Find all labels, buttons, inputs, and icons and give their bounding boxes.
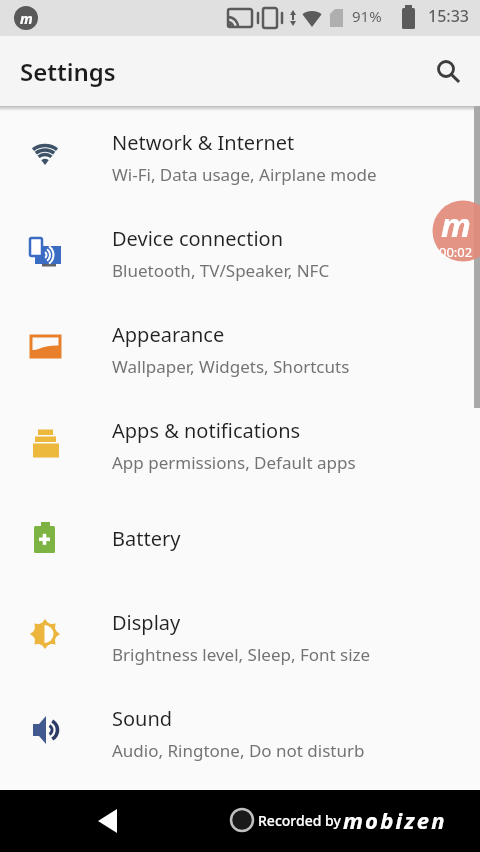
button[interactable]: Apps & notifications bbox=[0, 394, 480, 490]
staticText: Apps & notifications bbox=[112, 417, 301, 444]
button[interactable] bbox=[88, 805, 128, 837]
staticText: Settings bbox=[20, 55, 116, 88]
staticText: Audio, Ringtone, Do not disturb bbox=[112, 739, 365, 762]
staticText: Display bbox=[112, 609, 181, 636]
staticText: Recorded by bbox=[258, 811, 341, 830]
staticText: App permissions, Default apps bbox=[112, 451, 356, 474]
button[interactable]: m bbox=[432, 200, 480, 263]
staticText: Network & Internet bbox=[112, 129, 295, 156]
staticText: m bbox=[441, 202, 471, 242]
staticText: 15:33 bbox=[428, 5, 469, 27]
button[interactable]: Device connection bbox=[0, 202, 480, 298]
staticText: Wi-Fi, Data usage, Airplane mode bbox=[112, 163, 377, 186]
staticText: Wallpaper, Widgets, Shortcuts bbox=[112, 355, 350, 378]
button[interactable] bbox=[427, 50, 467, 90]
staticText: Brightness level, Sleep, Font size bbox=[112, 643, 371, 666]
staticText: 91% bbox=[352, 6, 382, 26]
staticText: mobizen bbox=[343, 805, 447, 835]
staticText: Device connection bbox=[112, 225, 284, 252]
button[interactable]: Network & Internet bbox=[0, 106, 480, 202]
staticText: Battery bbox=[112, 525, 181, 552]
button[interactable]: Display bbox=[0, 586, 480, 682]
staticText: Bluetooth, TV/Speaker, NFC bbox=[112, 259, 330, 282]
staticText: Sound bbox=[112, 705, 173, 732]
staticText: 00:02 bbox=[439, 243, 473, 261]
staticText: Appearance bbox=[112, 321, 225, 348]
button[interactable]: Battery bbox=[0, 490, 480, 586]
button[interactable]: Sound bbox=[0, 682, 480, 778]
staticText: m bbox=[20, 9, 33, 28]
button[interactable]: Appearance bbox=[0, 298, 480, 394]
